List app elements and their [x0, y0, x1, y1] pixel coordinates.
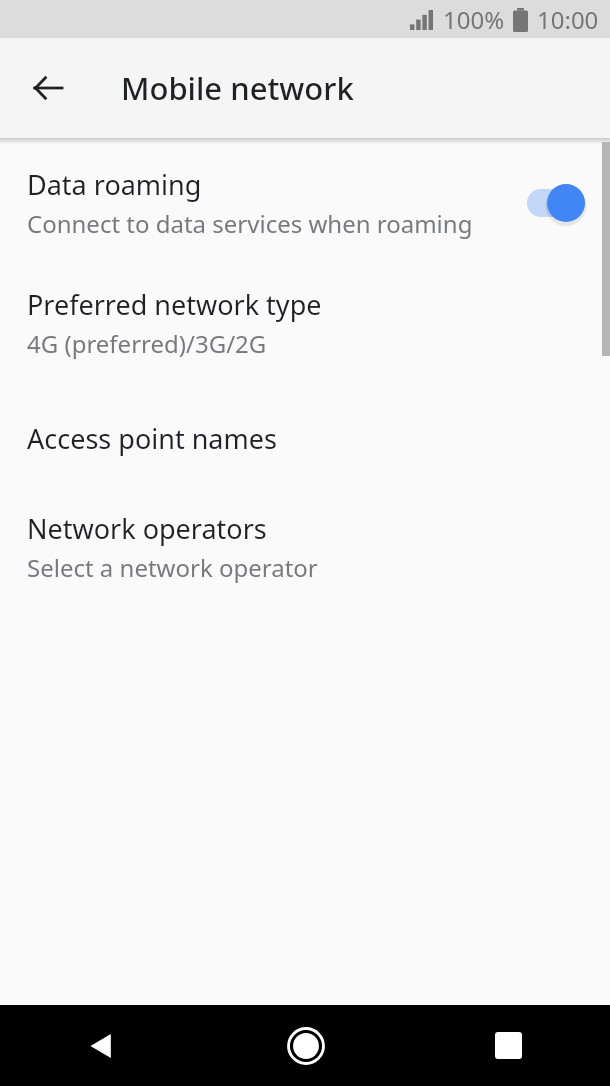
button[interactable]: Home	[204, 1005, 407, 1086]
staticText: Preferred network type	[27, 286, 322, 323]
staticText: 100%	[443, 3, 505, 36]
staticText: 4G (preferred)/3G/2G	[27, 327, 267, 360]
staticText: 10:00	[537, 3, 599, 36]
button[interactable]: Preferred network type	[0, 286, 610, 360]
staticText: Mobile network	[121, 67, 354, 109]
button[interactable]: Access point names	[0, 420, 610, 457]
button[interactable]: Recent apps	[407, 1005, 610, 1086]
button[interactable]: Navigate up	[14, 54, 82, 122]
staticText: Network operators	[27, 510, 267, 547]
button[interactable]: Network operators	[0, 510, 610, 584]
button[interactable]: Data roaming	[0, 166, 610, 240]
staticText: Data roaming	[27, 166, 202, 203]
staticText: Access point names	[27, 420, 277, 457]
staticText: Connect to data services when roaming	[27, 207, 473, 240]
button[interactable]: Data roaming toggle, on	[514, 178, 588, 228]
button[interactable]: Back	[0, 1005, 204, 1086]
staticText: Select a network operator	[27, 551, 318, 584]
